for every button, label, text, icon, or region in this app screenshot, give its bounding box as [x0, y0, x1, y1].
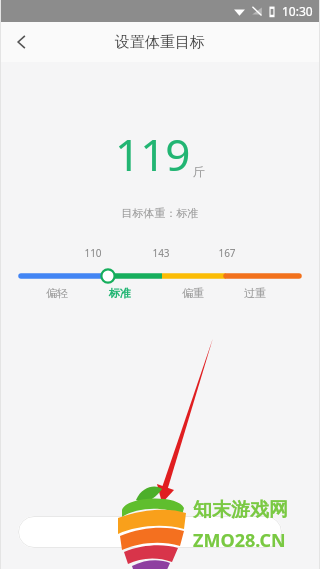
staticText: 目标体重：标准 — [0, 206, 320, 220]
staticText: 斤 — [193, 164, 205, 179]
staticText: 偏轻 — [46, 286, 68, 300]
staticText: 标准 — [109, 286, 131, 300]
staticText: 110 — [84, 246, 102, 260]
button[interactable]: 过重 — [235, 286, 275, 300]
staticText: 10:30 — [282, 3, 313, 19]
button[interactable]: 偏重 — [173, 286, 213, 300]
staticText: 偏重 — [182, 286, 204, 300]
staticText: 167 — [218, 246, 236, 260]
staticText: 知末游戏网 — [193, 498, 288, 522]
staticText: 119 — [115, 124, 191, 184]
staticText: 143 — [152, 246, 170, 260]
staticText: ZMO28.CN — [193, 528, 286, 553]
button[interactable]: Back — [0, 22, 44, 62]
button[interactable]: 偏轻 — [37, 286, 77, 300]
button[interactable]: 标准 — [100, 286, 140, 300]
staticText: 设置体重目标 — [115, 33, 205, 52]
staticText: 过重 — [244, 286, 266, 300]
button[interactable] — [18, 516, 282, 548]
